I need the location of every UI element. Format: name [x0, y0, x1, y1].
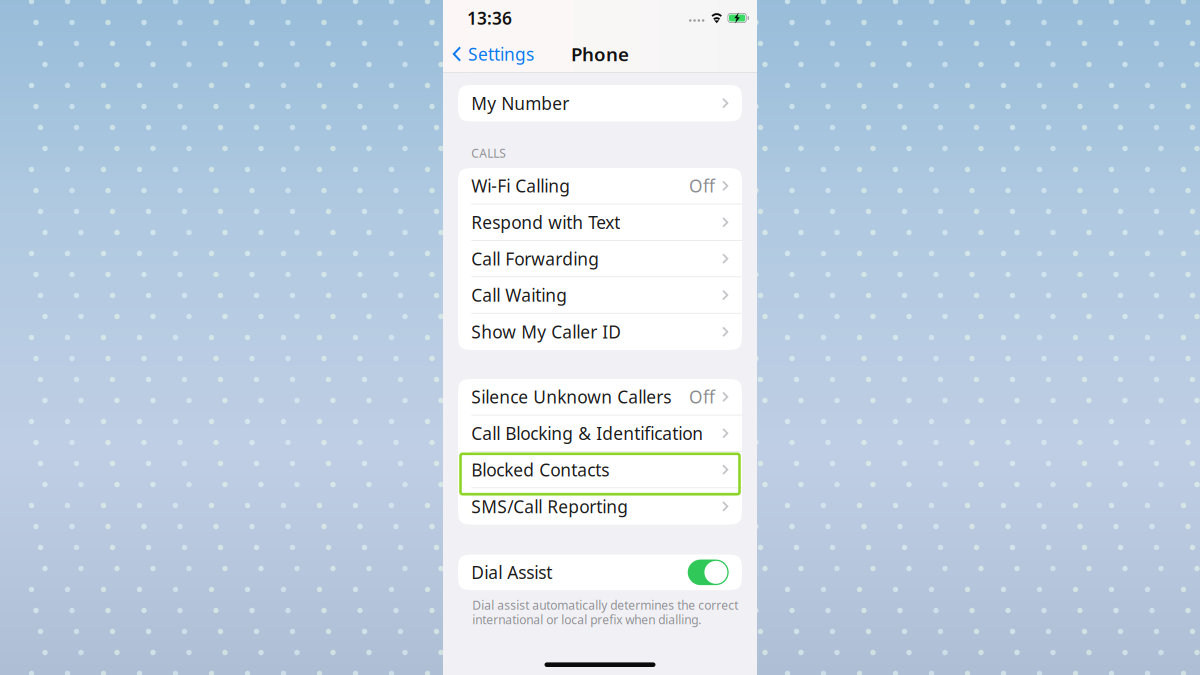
staticText: CALLS: [471, 145, 506, 161]
staticText: Respond with Text: [471, 211, 620, 234]
staticText: Dial assist automatically determines the…: [472, 597, 738, 613]
staticText: Off: [689, 174, 715, 197]
button[interactable]: Call Blocking & Identification: [458, 415, 742, 452]
staticText: Settings: [468, 42, 534, 65]
staticText: My Number: [471, 92, 569, 115]
button[interactable]: Call Forwarding: [458, 241, 742, 277]
staticText: Silence Unknown Callers: [471, 385, 671, 408]
staticText: Show My Caller ID: [471, 320, 621, 343]
staticText: SMS/Call Reporting: [471, 495, 628, 518]
button[interactable]: Wi-Fi Calling: [458, 168, 742, 204]
staticText: Wi-Fi Calling: [471, 174, 570, 197]
button[interactable]: Respond with Text: [458, 204, 742, 241]
button[interactable]: Show My Caller ID: [458, 314, 742, 350]
staticText: 13:36: [467, 6, 512, 29]
staticText: Phone: [571, 42, 629, 66]
button[interactable]: Dial Assist, on: [458, 555, 742, 590]
button[interactable]: Blocked Contacts: [458, 452, 742, 488]
staticText: Call Forwarding: [471, 247, 599, 270]
staticText: international or local prefix when diall…: [472, 611, 701, 627]
button[interactable]: SMS/Call Reporting: [458, 488, 742, 525]
staticText: Call Waiting: [471, 283, 567, 306]
button[interactable]: Silence Unknown Callers: [458, 379, 742, 415]
staticText: Dial Assist: [471, 561, 552, 584]
staticText: Blocked Contacts: [471, 458, 609, 481]
staticText: Call Blocking & Identification: [471, 422, 703, 445]
staticText: Off: [689, 385, 715, 408]
button[interactable]: Call Waiting: [458, 277, 742, 314]
button[interactable]: Back to Settings: [443, 37, 534, 70]
button[interactable]: My Number: [458, 85, 742, 121]
